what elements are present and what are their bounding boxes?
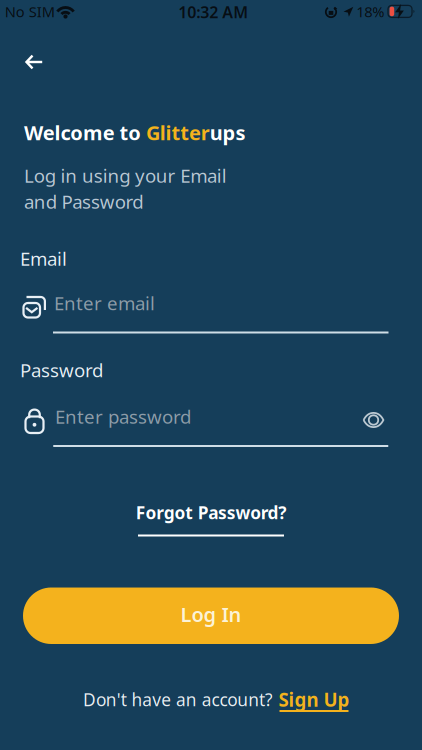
staticText: 10:32 AM bbox=[178, 1, 248, 23]
staticText: Password bbox=[20, 358, 103, 382]
button[interactable]: Show password bbox=[355, 403, 391, 437]
staticText: No SIM bbox=[5, 2, 55, 21]
staticText: Enter password bbox=[55, 404, 191, 429]
staticText: Log in using your Email and Password bbox=[24, 163, 227, 214]
staticText: 18% bbox=[356, 2, 384, 21]
button[interactable]: Log In bbox=[23, 587, 399, 644]
staticText: Sign Up bbox=[278, 687, 349, 712]
staticText: Forgot Password? bbox=[136, 501, 286, 524]
staticText: Log In bbox=[180, 601, 241, 628]
staticText: Enter email bbox=[54, 291, 155, 315]
staticText: ups bbox=[210, 119, 245, 146]
staticText: Don't have an account? bbox=[83, 688, 273, 711]
staticText: Welcome to bbox=[24, 119, 146, 146]
staticText: Email bbox=[20, 246, 67, 271]
staticText: Glitter bbox=[146, 119, 210, 146]
button[interactable]: Back bbox=[15, 46, 59, 78]
button[interactable]: Sign Up bbox=[269, 682, 359, 718]
button[interactable]: Forgot Password? bbox=[111, 497, 311, 541]
